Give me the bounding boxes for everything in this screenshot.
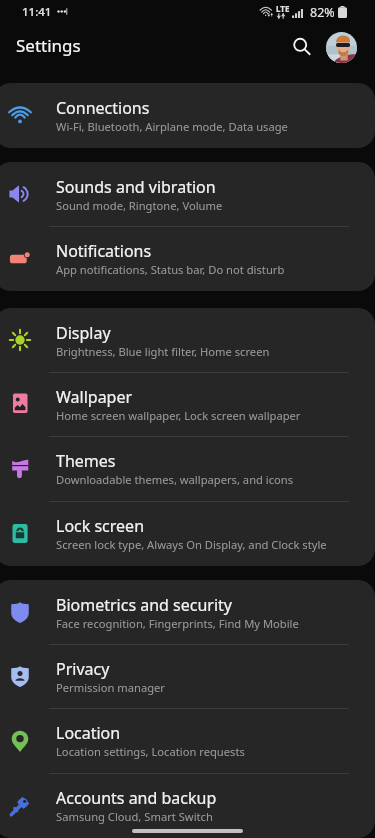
button[interactable]: Lock screen bbox=[0, 501, 375, 566]
staticText: Connections bbox=[56, 97, 150, 119]
staticText: Display bbox=[56, 322, 111, 344]
staticText: Sounds and vibration bbox=[56, 176, 216, 198]
staticText: Face recognition, Fingerprints, Find My … bbox=[56, 616, 299, 631]
staticText: LTE bbox=[276, 3, 290, 14]
staticText: Wallpaper bbox=[56, 386, 133, 408]
staticText: App notifications, Status bar, Do not di… bbox=[56, 262, 285, 277]
button[interactable]: Accounts and backup bbox=[0, 773, 375, 838]
staticText: Brightness, Blue light filter, Home scre… bbox=[56, 344, 270, 359]
staticText: Sound mode, Ringtone, Volume bbox=[56, 198, 223, 213]
button[interactable]: Sounds and vibration bbox=[0, 162, 375, 226]
button[interactable]: Themes bbox=[0, 436, 375, 501]
button[interactable]: Notifications bbox=[0, 226, 375, 291]
button[interactable]: Wallpaper bbox=[0, 372, 375, 436]
staticText: Settings bbox=[16, 34, 81, 57]
staticText: Permission manager bbox=[56, 680, 165, 695]
button[interactable]: Connections bbox=[0, 83, 375, 148]
button[interactable]: Search bbox=[285, 30, 319, 64]
staticText: Themes bbox=[56, 450, 116, 472]
staticText: Wi-Fi, Bluetooth, Airplane mode, Data us… bbox=[56, 119, 288, 134]
staticText: Biometrics and security bbox=[56, 594, 233, 616]
staticText: Notifications bbox=[56, 240, 152, 262]
staticText: Screen lock type, Always On Display, and… bbox=[56, 537, 327, 552]
staticText: Accounts and backup bbox=[56, 787, 217, 809]
staticText: 82% bbox=[310, 4, 335, 21]
button[interactable]: Biometrics and security bbox=[0, 580, 375, 644]
staticText: 11:41 bbox=[22, 4, 52, 20]
staticText: Location bbox=[56, 722, 121, 744]
staticText: Lock screen bbox=[56, 515, 145, 537]
staticText: Location settings, Location requests bbox=[56, 744, 245, 759]
staticText: Home screen wallpaper, Lock screen wallp… bbox=[56, 408, 301, 423]
button[interactable]: Display bbox=[0, 308, 375, 372]
staticText: Samsung Cloud, Smart Switch bbox=[56, 809, 213, 824]
button[interactable]: Profile bbox=[326, 32, 357, 63]
staticText: Privacy bbox=[56, 658, 110, 680]
button[interactable]: Location bbox=[0, 708, 375, 773]
staticText: Downloadable themes, wallpapers, and ico… bbox=[56, 472, 294, 487]
button[interactable]: Privacy bbox=[0, 644, 375, 708]
